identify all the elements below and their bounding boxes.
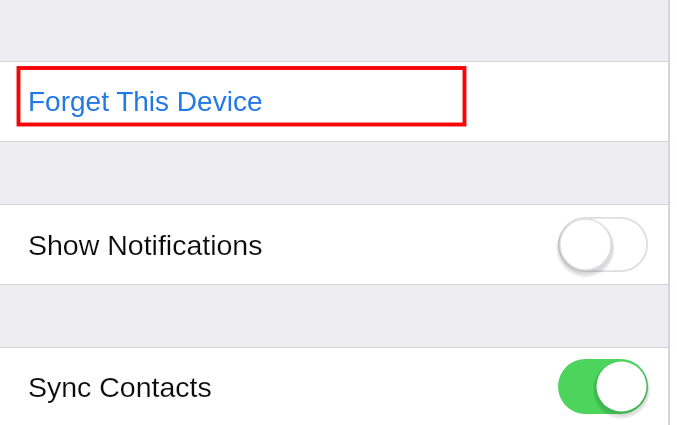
button[interactable]: Switch off <box>558 217 648 272</box>
button[interactable]: Sync Contacts <box>0 348 677 425</box>
staticText: Forget This Device <box>28 86 263 117</box>
button[interactable]: Switch on <box>558 359 648 414</box>
staticText: Sync Contacts <box>28 371 212 403</box>
staticText: Show Notifications <box>28 229 263 261</box>
button[interactable]: Forget This Device <box>0 62 677 141</box>
button[interactable]: Show Notifications <box>0 205 677 284</box>
